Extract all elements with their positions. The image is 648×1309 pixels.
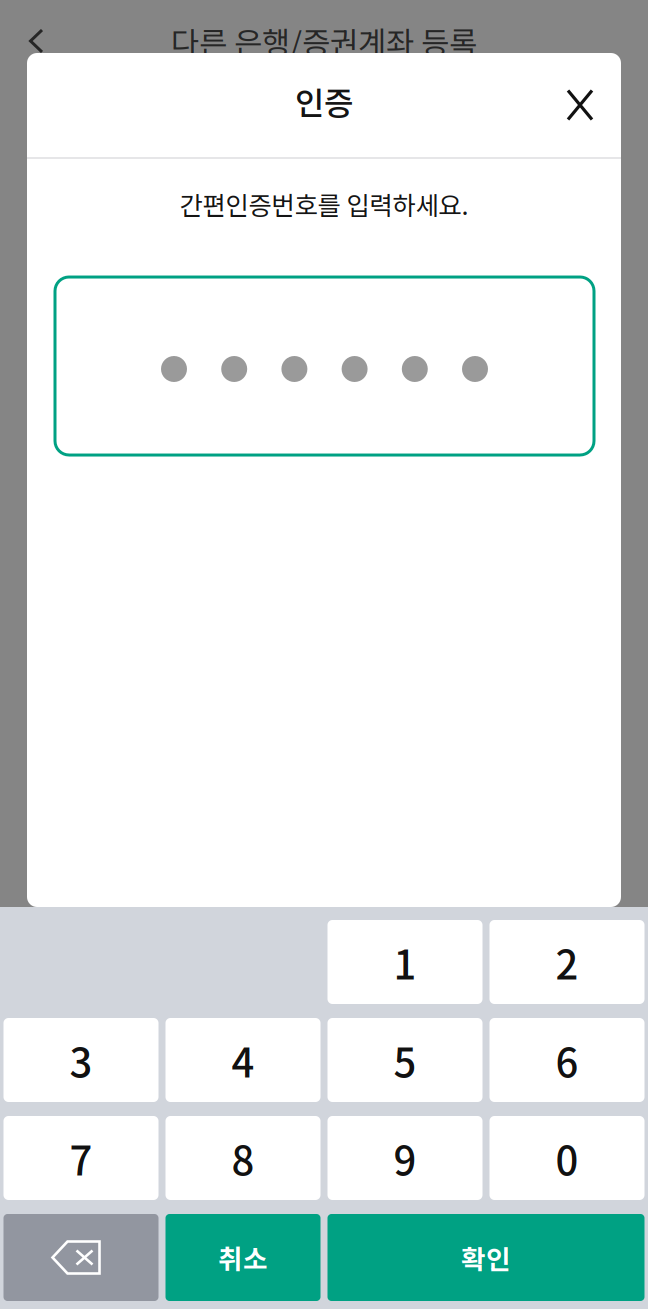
button[interactable]: 0: [489, 1116, 644, 1200]
staticText: 5: [393, 1031, 416, 1089]
staticText: 2: [555, 933, 578, 991]
staticText: 8: [231, 1129, 254, 1187]
button[interactable]: 4: [165, 1018, 320, 1102]
button[interactable]: 6: [489, 1018, 644, 1102]
staticText: 1: [393, 933, 416, 991]
staticText: 0: [555, 1129, 578, 1187]
staticText: 7: [69, 1129, 92, 1187]
button[interactable]: 취소: [165, 1214, 320, 1301]
button[interactable]: Close: [552, 53, 608, 157]
staticText: 확인: [461, 1238, 511, 1277]
staticText: 9: [393, 1129, 416, 1187]
button[interactable]: 9: [327, 1116, 482, 1200]
button[interactable]: 확인: [327, 1214, 644, 1301]
button[interactable]: 2: [489, 920, 644, 1004]
button[interactable]: Back: [0, 0, 72, 82]
staticText: 다른 은행/증권계좌 등록: [171, 19, 477, 63]
staticText: 인증: [295, 78, 353, 124]
button[interactable]: 5: [327, 1018, 482, 1102]
staticText: 6: [555, 1031, 578, 1089]
staticText: 취소: [218, 1238, 268, 1277]
button[interactable]: Delete: [3, 1214, 158, 1301]
button[interactable]: 8: [165, 1116, 320, 1200]
staticText: 간편인증번호를 입력하세요.: [179, 186, 468, 222]
button[interactable]: 3: [3, 1018, 158, 1102]
staticText: 3: [69, 1031, 92, 1089]
button[interactable]: 1: [327, 920, 482, 1004]
button[interactable]: 7: [3, 1116, 158, 1200]
staticText: 4: [231, 1031, 254, 1089]
